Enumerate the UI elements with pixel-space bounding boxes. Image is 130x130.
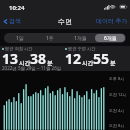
staticText: 오전 12시 bbox=[109, 92, 127, 97]
staticText: 1일 bbox=[16, 35, 24, 42]
staticText: 분 bbox=[47, 60, 53, 67]
staticText: 13 bbox=[2, 49, 19, 68]
button[interactable]: 1일 bbox=[5, 34, 35, 42]
staticText: 10:24 bbox=[9, 4, 25, 12]
staticText: 데이터 추가 bbox=[96, 17, 128, 25]
staticText: 시간 bbox=[19, 60, 30, 67]
staticText: 오전 4시 bbox=[109, 108, 125, 113]
staticText: 55 bbox=[93, 49, 110, 68]
button[interactable]: 1주 bbox=[35, 34, 65, 42]
button[interactable]: 1개월 bbox=[65, 34, 95, 42]
staticText: 평균 취침 시간 bbox=[5, 46, 33, 52]
staticText: 38 bbox=[30, 49, 47, 68]
staticText: 1개월 bbox=[74, 35, 87, 42]
staticText: 평균 수면 시간 bbox=[68, 46, 96, 52]
button[interactable]: 데이터 추가 bbox=[93, 15, 130, 27]
staticText: 검색 bbox=[9, 17, 21, 25]
staticText: 1주 bbox=[46, 35, 54, 42]
staticText: 오전 8시 bbox=[109, 123, 125, 128]
button[interactable]: 6개월 bbox=[95, 34, 125, 42]
staticText: 오후 8시 bbox=[109, 76, 125, 81]
staticText: 6개월 bbox=[104, 35, 117, 42]
staticText: 12 bbox=[65, 49, 82, 68]
staticText: 2022년 5월 29일 ~ 11월 26일 bbox=[2, 65, 62, 71]
staticText: 시간 bbox=[82, 60, 93, 67]
staticText: 수면 bbox=[58, 17, 72, 26]
staticText: 분 bbox=[110, 60, 116, 67]
button[interactable]: 검색 bbox=[0, 15, 24, 27]
